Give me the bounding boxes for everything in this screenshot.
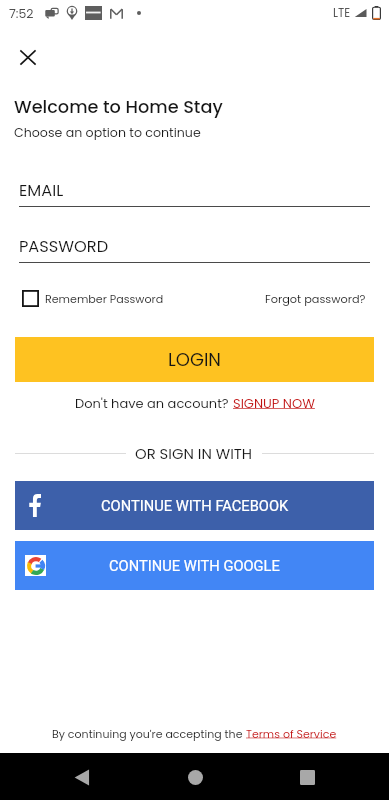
- button[interactable]: Back: [66, 761, 98, 793]
- staticText: Don't have an account?: [75, 394, 233, 412]
- button[interactable]: Home: [178, 760, 212, 794]
- staticText: PASSWORD: [19, 235, 109, 258]
- staticText: EMAIL: [19, 179, 64, 202]
- staticText: Choose an option to continue: [14, 124, 201, 142]
- staticText: Welcome to Home Stay: [14, 94, 223, 119]
- staticText: LTE: [333, 5, 351, 21]
- button[interactable]: LOGIN: [15, 337, 374, 382]
- button[interactable]: CONTINUE WITH GOOGLE: [15, 541, 374, 590]
- staticText: LOGIN: [168, 347, 222, 372]
- staticText: OR SIGN IN WITH: [135, 443, 253, 464]
- staticText: By continuing you're accepting the: [52, 726, 246, 741]
- button[interactable]: Close: [14, 44, 41, 71]
- button[interactable]: Recent apps: [291, 761, 323, 793]
- button[interactable]: Terms of Service: [246, 726, 337, 741]
- staticText: CONTINUE WITH GOOGLE: [109, 557, 280, 574]
- staticText: 7:52: [9, 5, 34, 22]
- button[interactable]: Forgot password?: [265, 291, 366, 307]
- button[interactable]: SIGNUP NOW: [233, 394, 315, 412]
- staticText: CONTINUE WITH FACEBOOK: [101, 497, 289, 514]
- button[interactable]: Remember Password: [22, 290, 164, 307]
- staticText: Remember Password: [45, 291, 164, 307]
- button[interactable]: CONTINUE WITH FACEBOOK: [15, 481, 374, 530]
